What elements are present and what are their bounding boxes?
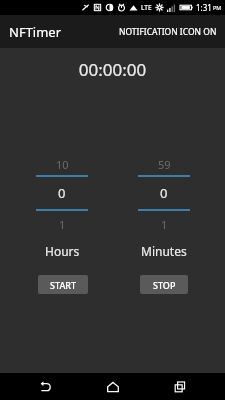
staticText: NFTimer — [9, 23, 62, 41]
staticText: 00:00:00 — [0, 58, 225, 81]
staticText: START — [50, 279, 77, 291]
staticText: Hours — [45, 243, 80, 259]
staticText: LTE — [141, 3, 152, 12]
staticText: PM — [213, 4, 222, 11]
staticText: 1:31 — [196, 2, 212, 13]
staticText: 1 — [59, 217, 66, 232]
staticText: 59 — [158, 157, 171, 172]
button[interactable]: 0 — [18, 177, 106, 209]
staticText: 0 — [58, 184, 66, 202]
button[interactable]: 1 — [18, 211, 106, 237]
staticText: STOP — [153, 279, 176, 291]
button[interactable]: Home — [90, 373, 136, 400]
button[interactable]: 0 — [120, 177, 208, 209]
staticText: 10 — [56, 157, 69, 172]
button[interactable]: Recent apps — [157, 373, 203, 400]
staticText: 1 — [161, 217, 168, 232]
staticText: Minutes — [141, 243, 187, 259]
staticText: 0 — [160, 184, 168, 202]
button[interactable]: Back — [22, 373, 68, 400]
staticText: NOTIFICATION ICON ON — [119, 26, 217, 38]
button[interactable]: 10 — [18, 153, 106, 175]
button[interactable]: NOTIFICATION ICON ON — [117, 22, 219, 42]
button[interactable]: 1 — [120, 211, 208, 237]
button[interactable]: START — [38, 275, 88, 294]
button[interactable]: 59 — [120, 153, 208, 175]
button[interactable]: STOP — [140, 275, 188, 294]
